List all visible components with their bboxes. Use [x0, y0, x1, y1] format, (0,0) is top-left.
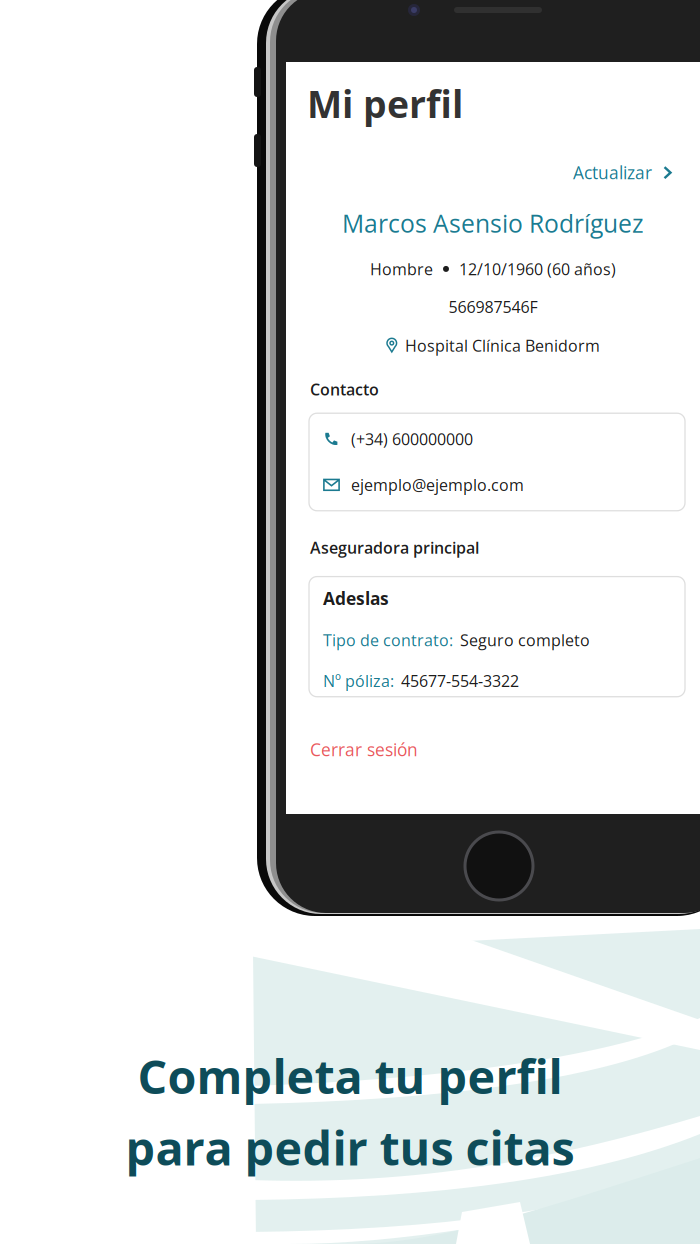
staticText: Actualizar: [573, 161, 652, 184]
staticText: 45677-554-3322: [401, 670, 519, 692]
staticText: Adeslas: [323, 587, 389, 610]
staticText: Marcos Asensio Rodríguez: [342, 206, 644, 240]
button[interactable]: Cerrar sesión: [286, 697, 700, 761]
staticText: Mi perfil: [307, 78, 463, 129]
staticText: Aseguradora principal: [310, 537, 479, 559]
staticText: ejemplo@ejemplo.com: [351, 474, 524, 496]
staticText: Cerrar sesión: [310, 738, 418, 761]
staticText: Completa tu perfil: [137, 1044, 562, 1108]
staticText: Hospital Clínica Benidorm: [405, 335, 600, 356]
staticText: Tipo de contrato:: [323, 629, 453, 651]
staticText: 12/10/1960 (60 años): [459, 258, 616, 280]
staticText: Seguro completo: [460, 629, 590, 651]
staticText: para pedir tus citas: [125, 1116, 574, 1179]
staticText: 566987546F: [448, 296, 537, 318]
staticText: Nº póliza:: [323, 670, 394, 692]
staticText: (+34) 600000000: [351, 428, 473, 450]
staticText: Contacto: [310, 378, 379, 400]
staticText: Hombre: [370, 258, 433, 280]
button[interactable]: Actualizar: [286, 129, 700, 184]
